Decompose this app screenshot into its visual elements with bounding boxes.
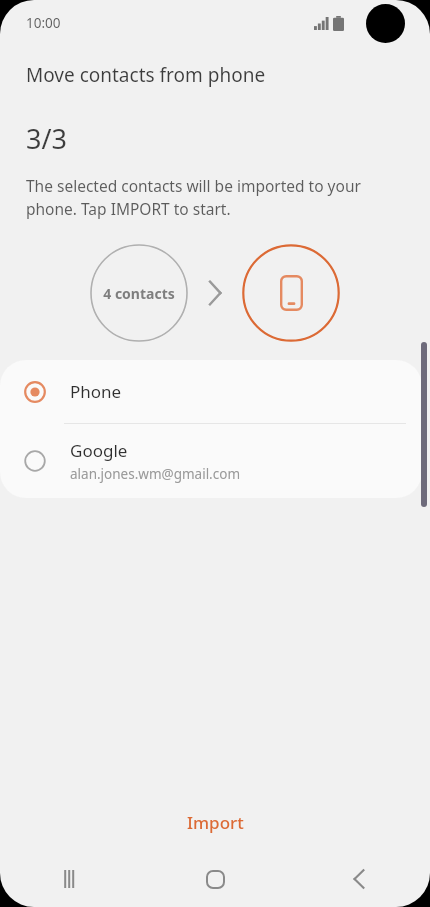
staticText: The selected contacts will be imported t… (26, 175, 400, 220)
button[interactable]: Home (144, 851, 287, 907)
staticText: Google (70, 439, 128, 462)
staticText: Move contacts from phone (26, 62, 266, 88)
button[interactable]: Import (0, 793, 430, 851)
button[interactable]: Google (0, 424, 422, 498)
staticText: Import (187, 811, 244, 834)
button[interactable]: Phone (0, 360, 422, 423)
button[interactable]: Back (287, 851, 430, 907)
staticText: 4 contacts (103, 284, 175, 303)
button[interactable]: Recent apps (0, 851, 144, 907)
staticText: alan.jones.wm@gmail.com (70, 465, 241, 483)
staticText: 10:00 (26, 14, 61, 32)
staticText: 3/3 (26, 120, 67, 157)
staticText: Phone (70, 380, 122, 403)
